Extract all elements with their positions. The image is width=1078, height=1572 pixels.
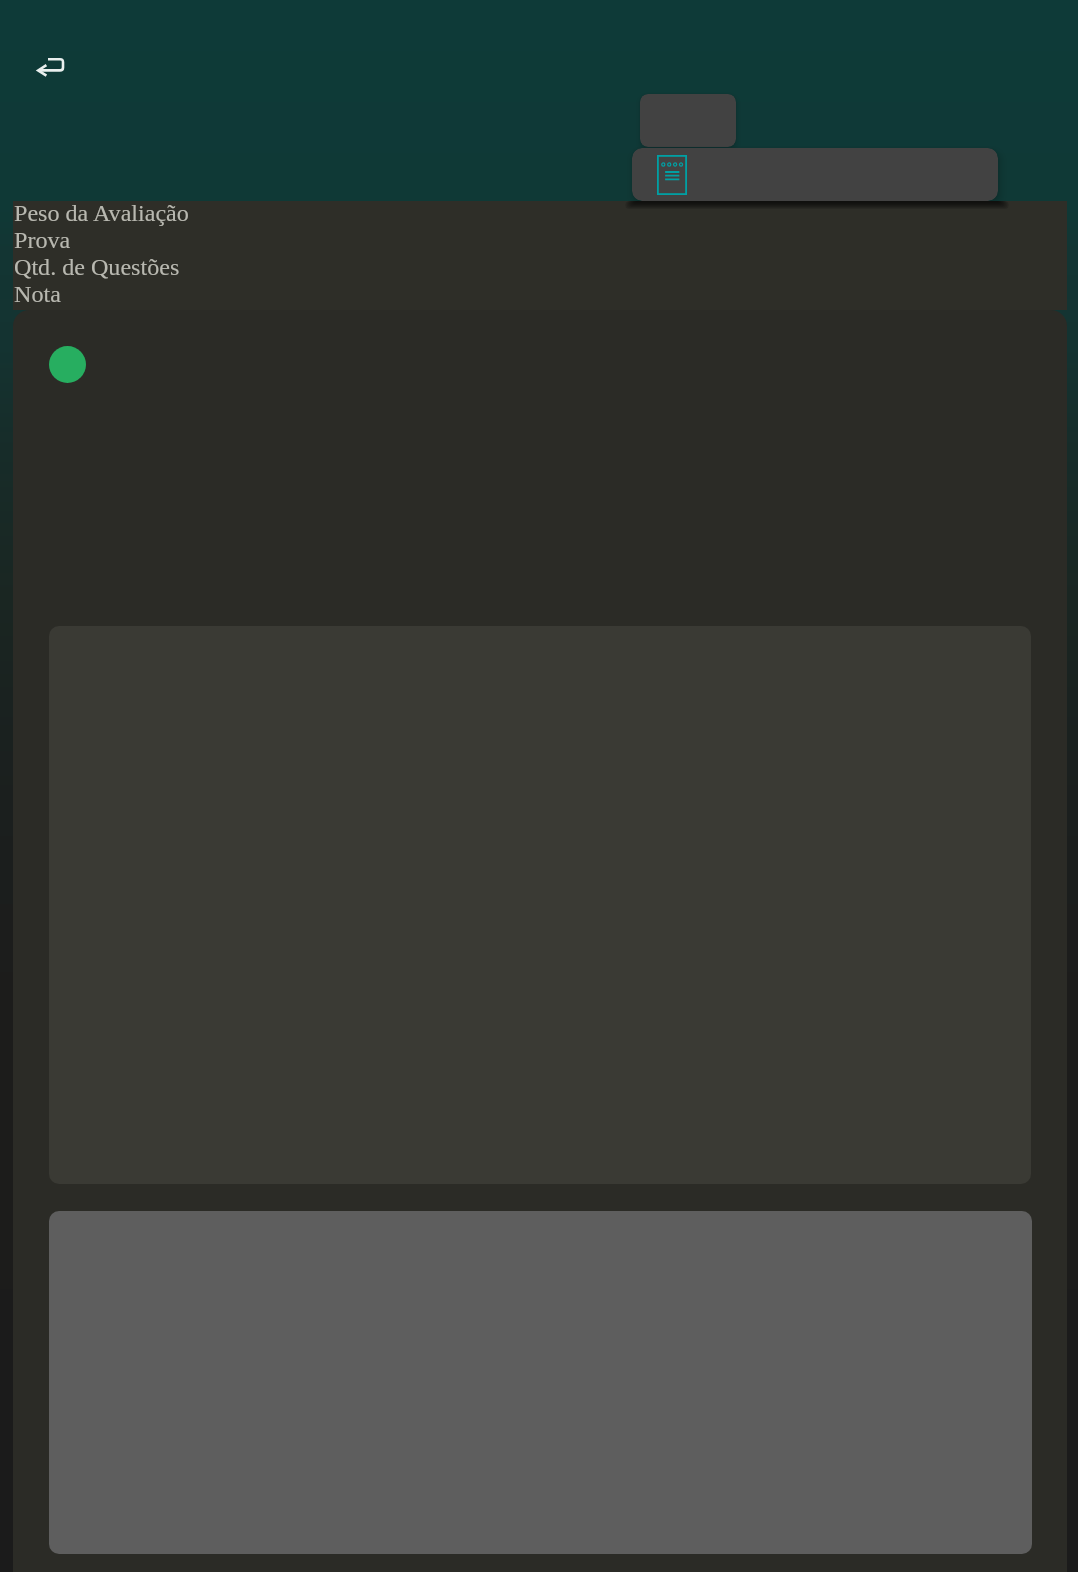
button[interactable]: Notes [632, 148, 998, 201]
staticText: Qtd. de Questões [14, 254, 180, 281]
staticText: Peso da Avaliação [14, 200, 189, 227]
button[interactable]: Back [20, 44, 80, 92]
staticText: Nota [14, 281, 61, 308]
button[interactable]: Tab [640, 94, 736, 147]
staticText: Prova [14, 227, 71, 254]
